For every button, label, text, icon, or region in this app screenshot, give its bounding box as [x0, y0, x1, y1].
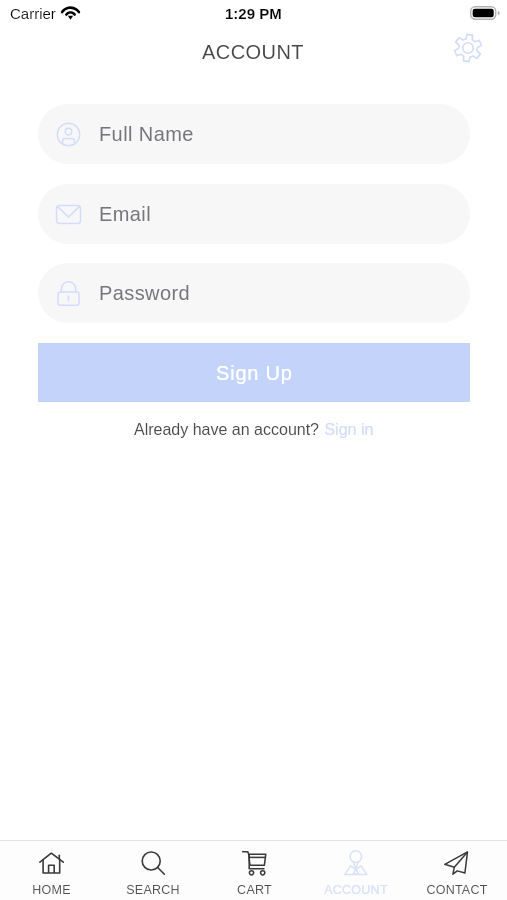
- staticText: SEARCH: [126, 883, 180, 897]
- button[interactable]: Password: [38, 263, 470, 323]
- staticText: Full Name: [99, 123, 194, 145]
- staticText: CART: [237, 883, 272, 897]
- staticText: CONTACT: [426, 883, 488, 897]
- button[interactable]: CART: [204, 841, 305, 900]
- button[interactable]: CONTACT: [406, 841, 507, 900]
- staticText: Carrier: [10, 5, 56, 22]
- staticText: Sign in: [320, 421, 374, 439]
- button[interactable]: Sign Up: [38, 343, 470, 402]
- button[interactable]: ACCOUNT: [305, 841, 406, 900]
- button[interactable]: Settings: [449, 29, 487, 67]
- staticText: 1:29 PM: [225, 5, 282, 22]
- button[interactable]: HOME: [0, 841, 102, 900]
- staticText: Sign Up: [216, 362, 293, 384]
- button[interactable]: Email: [38, 184, 470, 244]
- staticText: HOME: [32, 883, 71, 897]
- staticText: ACCOUNT: [324, 883, 388, 897]
- button[interactable]: Sign in: [320, 421, 374, 439]
- staticText: Password: [99, 282, 191, 304]
- button[interactable]: Full Name: [38, 104, 470, 164]
- staticText: Already have an account?: [134, 421, 320, 439]
- button[interactable]: SEARCH: [102, 841, 204, 900]
- staticText: Email: [99, 203, 152, 225]
- staticText: ACCOUNT: [202, 41, 305, 63]
